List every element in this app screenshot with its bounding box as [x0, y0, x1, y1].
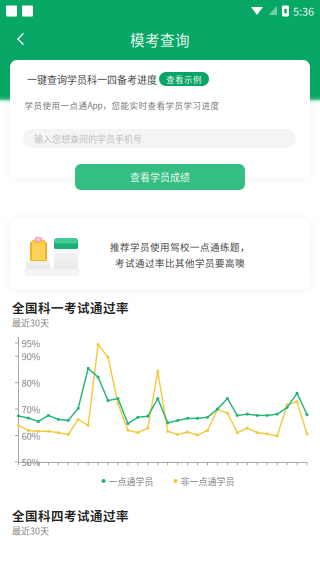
staticText: 查看学员成绩: [130, 170, 190, 184]
staticText: 一点通学员: [108, 474, 153, 487]
staticText: 5:36: [293, 3, 314, 19]
staticText: 一键查询学员科一四备考进度: [27, 72, 157, 87]
staticText: 60%: [21, 429, 40, 442]
button[interactable]: Back: [6, 24, 36, 54]
button[interactable]: 输入您想查阅的学员手机号: [23, 129, 296, 148]
staticText: 最近30天: [12, 316, 49, 329]
staticText: 模考查询: [130, 29, 190, 50]
staticText: 输入您想查阅的学员手机号: [34, 132, 142, 145]
staticText: 70%: [21, 402, 40, 416]
staticText: 最近30天: [12, 524, 49, 537]
staticText: 非一点通学员: [180, 474, 234, 487]
staticText: 考试通过率比其他学员要高噢: [115, 256, 245, 269]
staticText: 50%: [21, 455, 40, 469]
staticText: 全国科四考试通过率: [12, 506, 129, 525]
staticText: 推荐学员使用驾校一点通练题，: [110, 240, 250, 253]
staticText: 80%: [21, 376, 40, 390]
staticText: 查看示例: [166, 73, 202, 85]
staticText: 95%: [21, 336, 40, 350]
staticText: 学员使用一点通App，您能实时查看学员学习进度: [24, 99, 219, 111]
staticText: 全国科一考试通过率: [12, 298, 129, 317]
staticText: 90%: [21, 349, 40, 363]
button[interactable]: 查看示例: [159, 72, 209, 86]
button[interactable]: 查看学员成绩: [75, 164, 245, 190]
